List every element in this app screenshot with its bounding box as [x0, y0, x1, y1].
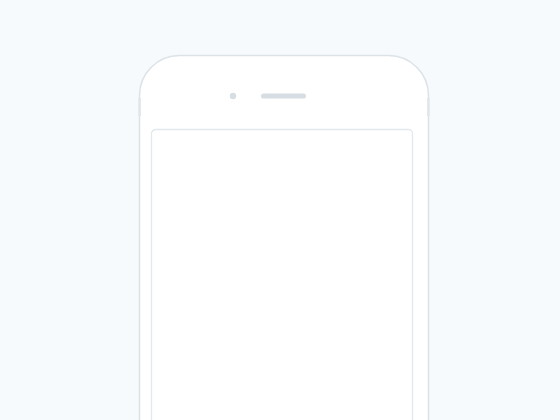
button[interactable]: Phone device mockup: [0, 0, 560, 420]
